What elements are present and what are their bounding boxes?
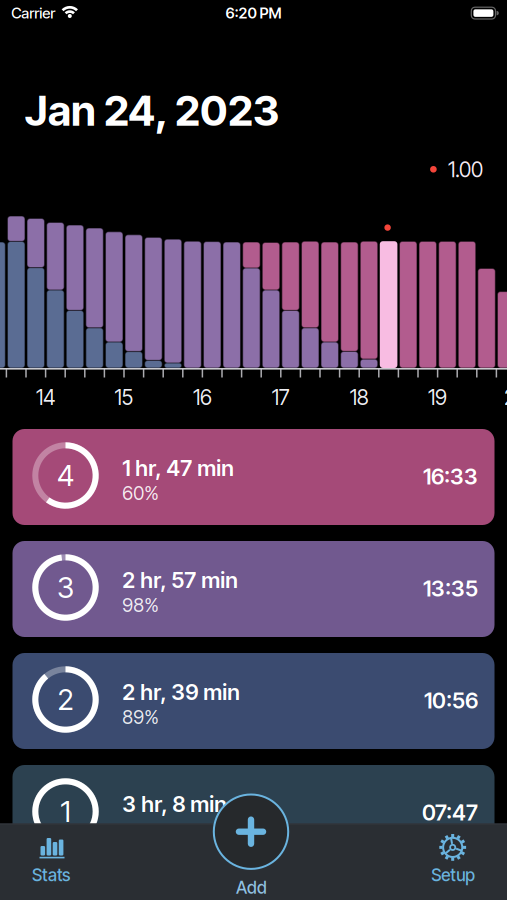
staticText: Add [236, 877, 267, 898]
staticText: 3 hr, 8 min [122, 791, 227, 817]
staticText: Jan 24, 2023 [25, 85, 279, 136]
staticText: Setup [431, 865, 475, 885]
staticText: 07:47 [422, 799, 478, 826]
staticText: 17 [272, 385, 290, 410]
staticText: 1 hr, 47 min [122, 455, 234, 481]
staticText: 18 [350, 385, 369, 410]
staticText: 2 [57, 682, 73, 717]
staticText: 10:56 [424, 687, 478, 714]
staticText: 60% [122, 482, 159, 505]
staticText: Carrier [11, 4, 55, 22]
staticText: 89% [122, 706, 159, 729]
staticText: 98% [122, 594, 159, 617]
staticText: 2 hr, 57 min [122, 567, 238, 593]
staticText: 16:33 [423, 463, 478, 490]
staticText: 15 [114, 385, 133, 410]
staticText: 2 hr, 39 min [122, 679, 240, 705]
staticText: 4 [57, 458, 74, 493]
staticText: 16 [193, 385, 212, 410]
staticText: Stats [32, 865, 70, 885]
staticText: 6:20 PM [225, 4, 281, 22]
staticText: 20 [504, 385, 507, 410]
staticText: 19 [428, 385, 447, 410]
staticText: 13:35 [423, 575, 478, 602]
staticText: 1 [60, 794, 70, 829]
staticText: 3 [57, 570, 74, 605]
staticText: 1.00 [448, 157, 483, 182]
staticText: 14 [36, 385, 55, 410]
